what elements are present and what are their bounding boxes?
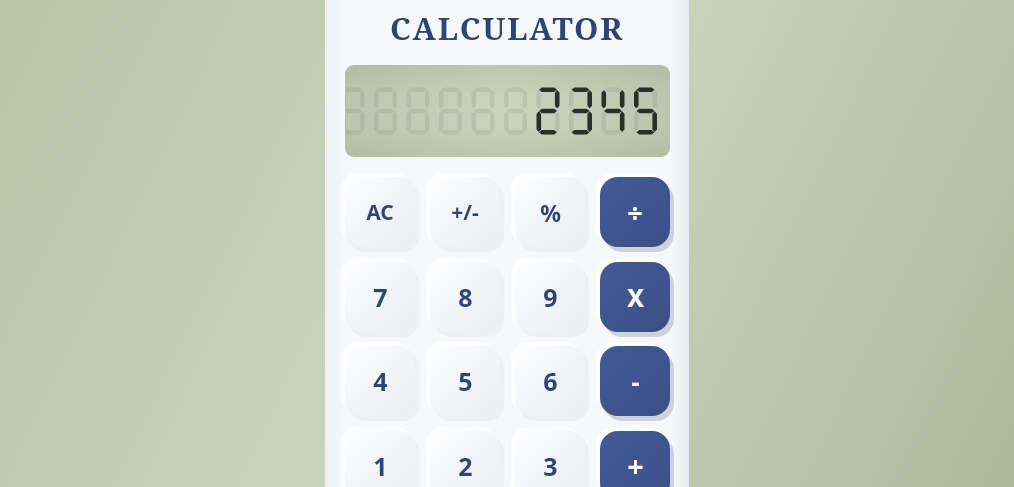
button[interactable]: AC [345, 177, 415, 247]
staticText: CALCULATOR [390, 7, 625, 49]
button[interactable]: + [600, 431, 670, 487]
button[interactable]: X [600, 262, 670, 332]
staticText: 2 [458, 449, 473, 483]
other: 7 [345, 262, 415, 332]
staticText: 6 [543, 364, 558, 398]
other: 8 [430, 262, 500, 332]
staticText: 3 [543, 449, 558, 483]
button[interactable]: 8 [430, 262, 500, 332]
button[interactable]: 3 [515, 431, 585, 487]
staticText: 1 [373, 449, 388, 483]
other: +/- [430, 177, 500, 247]
button[interactable]: 5 [430, 346, 500, 416]
staticText: 8 [458, 280, 473, 314]
staticText: 5 [458, 364, 473, 398]
other: + [600, 431, 670, 487]
other: 6 [515, 346, 585, 416]
other: 4 [345, 346, 415, 416]
button[interactable]: 6 [515, 346, 585, 416]
button[interactable]: 4 [345, 346, 415, 416]
button[interactable]: % [515, 177, 585, 247]
staticText: % [540, 197, 561, 228]
staticText: X [627, 280, 644, 314]
other: ÷ [600, 177, 670, 247]
button[interactable]: 1 [345, 431, 415, 487]
button[interactable]: ÷ [600, 177, 670, 247]
staticText: ÷ [627, 194, 643, 231]
button[interactable]: 7 [345, 262, 415, 332]
other: AC [345, 177, 415, 247]
other: 9 [515, 262, 585, 332]
other: - [600, 346, 670, 416]
staticText: AC [366, 198, 394, 227]
staticText: + [627, 447, 644, 485]
button[interactable]: +/- [430, 177, 500, 247]
other: 3 [515, 431, 585, 487]
button[interactable]: 2 [430, 431, 500, 487]
other: % [515, 177, 585, 247]
other: 1 [345, 431, 415, 487]
button[interactable]: 9 [515, 262, 585, 332]
other: 2 [430, 431, 500, 487]
staticText: 4 [373, 364, 388, 398]
staticText: +/- [451, 198, 479, 227]
button[interactable]: - [600, 346, 670, 416]
staticText: 9 [543, 280, 558, 314]
other: 5 [430, 346, 500, 416]
staticText: 7 [373, 280, 388, 314]
other: X [600, 262, 670, 332]
staticText: - [631, 364, 640, 398]
